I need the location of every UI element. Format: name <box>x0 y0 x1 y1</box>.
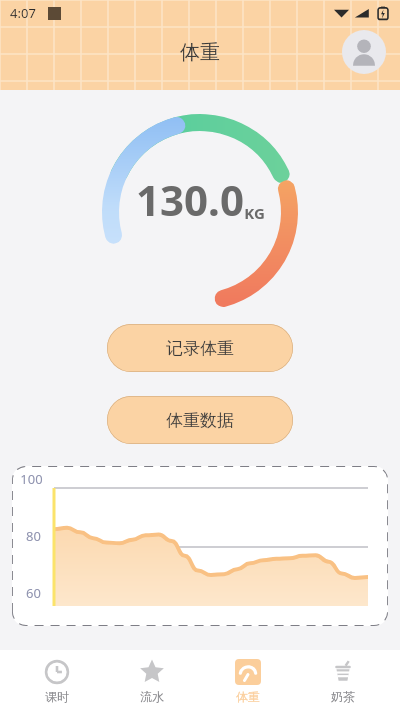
button[interactable]: 流水 <box>113 650 191 712</box>
staticText: 体重 <box>180 40 220 65</box>
staticText: 60 <box>26 584 41 602</box>
staticText: 100 <box>20 470 43 488</box>
button[interactable]: 记录体重 <box>107 324 293 372</box>
button[interactable]: 课时 <box>18 650 96 712</box>
staticText: 奶茶 <box>331 689 355 704</box>
staticText: 体重数据 <box>166 410 234 431</box>
button[interactable]: 奶茶 <box>304 650 382 712</box>
button[interactable]: 体重数据 <box>107 396 293 444</box>
button[interactable]: 100 <box>12 466 388 626</box>
staticText: 课时 <box>45 689 69 704</box>
staticText: KG <box>244 203 265 223</box>
staticText: 记录体重 <box>166 338 234 359</box>
button[interactable]: 体重 <box>209 650 287 712</box>
staticText: 4:07 <box>10 4 36 22</box>
staticText: 流水 <box>140 689 164 704</box>
button[interactable]: Profile <box>342 30 386 74</box>
staticText: 130.0 <box>136 171 244 228</box>
staticText: 80 <box>26 527 41 545</box>
staticText: 体重 <box>236 689 260 704</box>
